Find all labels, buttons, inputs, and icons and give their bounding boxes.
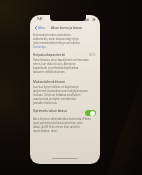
staticText: Akku	[38, 26, 45, 30]
button[interactable]: Akku	[35, 26, 47, 30]
button[interactable]: Optimoitu akun lataus	[33, 107, 96, 115]
staticText: Suoritus kyvyn hallinta on käytössä ja j…	[33, 85, 89, 105]
staticText: 9:41	[37, 17, 43, 21]
button[interactable]: Lisätietoja...	[33, 45, 48, 49]
staticText: Mukautishenkilöstuö	[33, 80, 66, 84]
staticText: Akun kirjoitus vähentää akun kulumista. …	[33, 117, 91, 133]
staticText: Heijastuskapasiteetti	[33, 53, 66, 57]
staticText: 50 %	[89, 53, 96, 57]
staticText: Tämä ilmaisee akun kapasiteetin suhteess…	[33, 58, 89, 74]
other: Optimoitu akun lataus	[85, 110, 96, 116]
staticText: Optimoitu akun lataus	[33, 109, 67, 113]
staticText: Ensimmäinen akun asetuksista valikoimall…	[33, 33, 81, 45]
staticText: Akun kunto ja lataus	[51, 26, 83, 30]
